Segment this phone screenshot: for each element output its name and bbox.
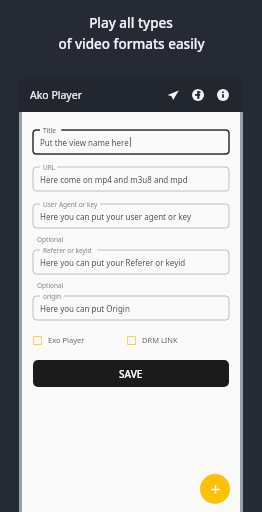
button[interactable]: Here come on mp4 and m3u8 and mpd <box>33 167 229 191</box>
staticText: Play all types <box>89 14 173 32</box>
staticText: Optional <box>37 281 64 290</box>
button[interactable]: Facebook <box>188 85 208 105</box>
staticText: DRM LINK <box>142 335 178 345</box>
button[interactable]: SAVE <box>33 360 229 387</box>
staticText: Here you can put your user agent or key <box>40 211 191 222</box>
staticText: Put the view name here <box>40 137 129 148</box>
staticText: Here you can put your Referer or keyid <box>40 257 186 268</box>
staticText: Title <box>43 126 56 135</box>
staticText: of video formats easily <box>58 35 205 53</box>
button[interactable]: Info <box>213 85 233 105</box>
button[interactable]: Exo Player <box>33 333 85 347</box>
staticText: Here you can put Origin <box>40 303 130 314</box>
staticText: Optional <box>37 235 64 244</box>
staticText: URL <box>43 163 56 172</box>
staticText: User Agent or key <box>43 200 98 209</box>
button[interactable]: Telegram <box>163 85 183 105</box>
button[interactable]: Put the view name here <box>33 130 229 154</box>
staticText: Referer or keyid <box>43 246 92 255</box>
staticText: Exo Player <box>48 335 85 345</box>
button[interactable]: DRM LINK <box>127 333 178 347</box>
button[interactable]: Here you can put your Referer or keyid <box>33 250 229 274</box>
staticText: SAVE <box>119 367 143 381</box>
button[interactable]: Here you can put your user agent or key <box>33 204 229 228</box>
staticText: Ako Player <box>30 88 82 102</box>
staticText: origin <box>43 292 61 301</box>
staticText: Here come on mp4 and m3u8 and mpd <box>40 174 188 185</box>
button[interactable]: Add <box>200 474 230 504</box>
button[interactable]: Here you can put Origin <box>33 296 229 320</box>
